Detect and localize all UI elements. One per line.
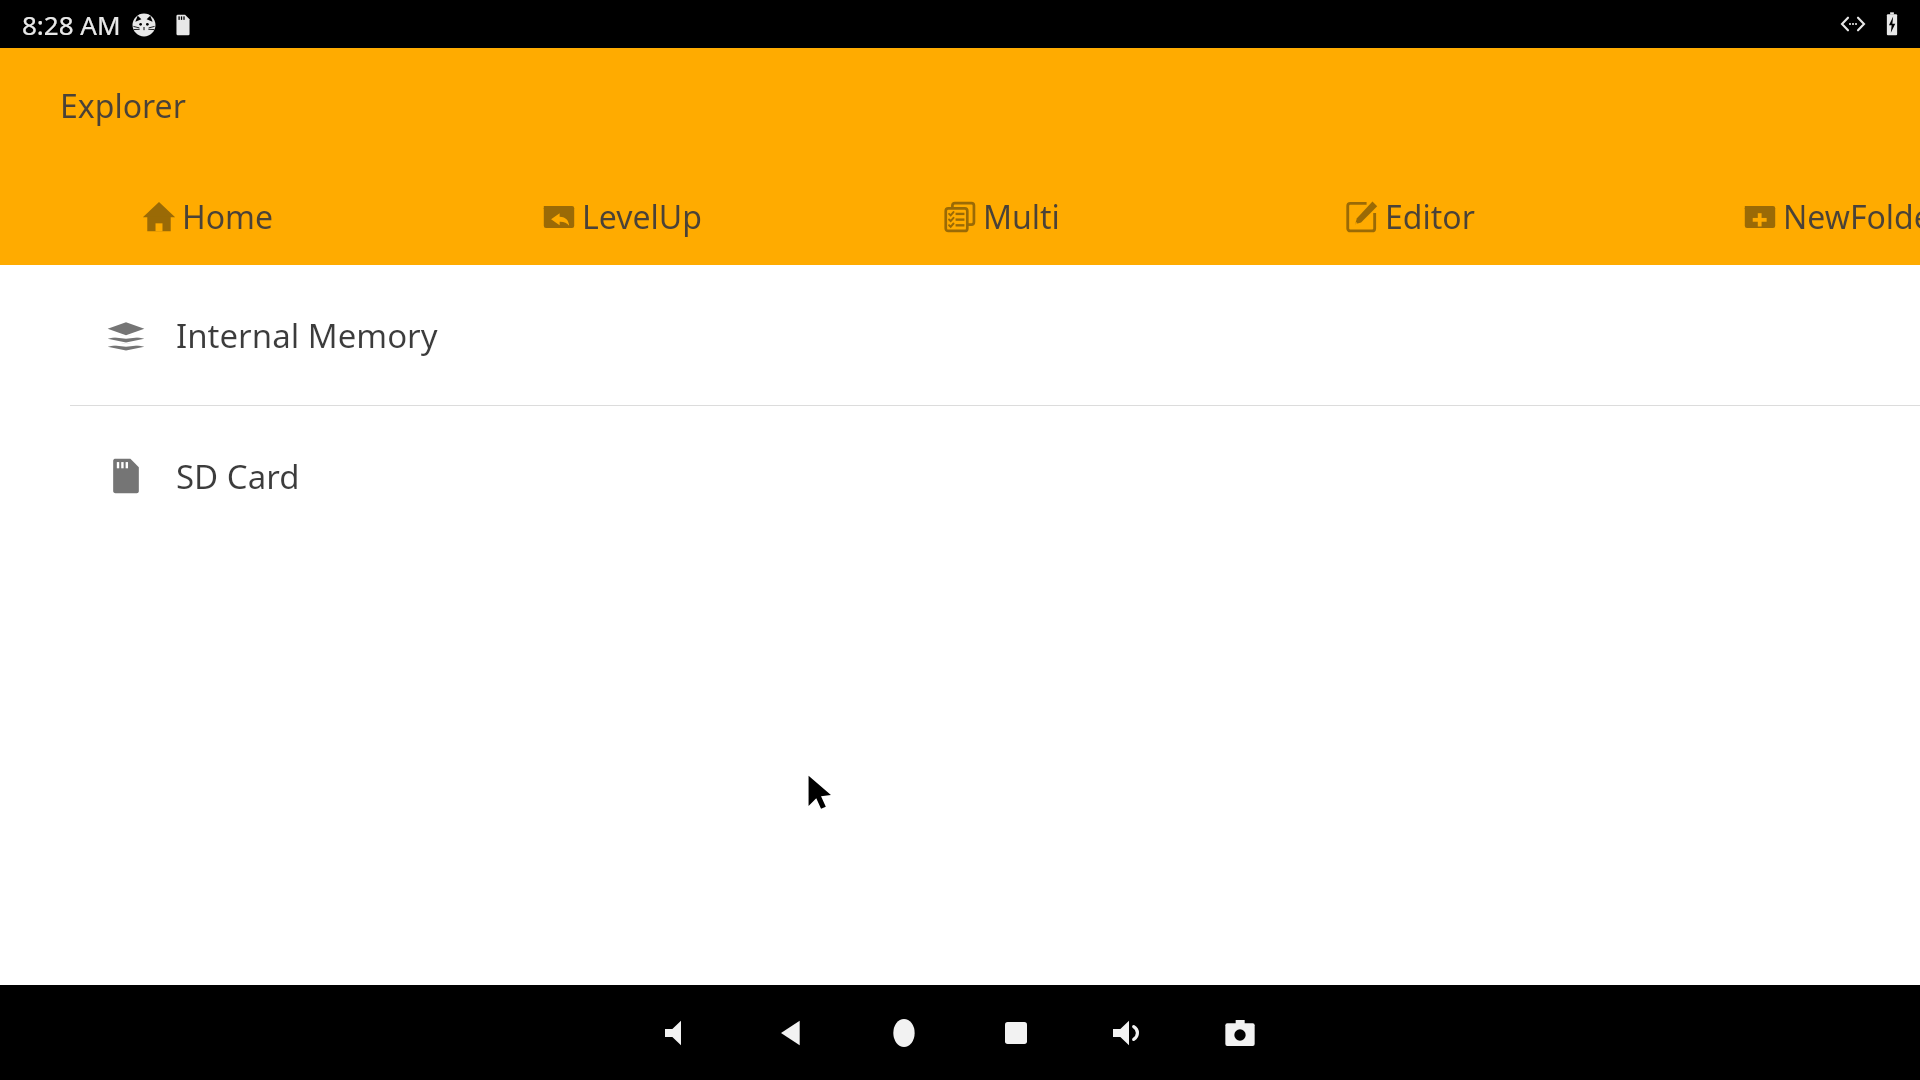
staticText: LevelUp (582, 195, 702, 239)
button[interactable]: Back (744, 985, 840, 1080)
button[interactable]: Home (856, 985, 952, 1080)
button[interactable]: Multi (935, 189, 1066, 245)
staticText: Internal Memory (176, 313, 438, 358)
button[interactable]: Screenshot (1192, 985, 1288, 1080)
button[interactable]: Internal Memory (0, 265, 1920, 405)
button[interactable]: Home (134, 189, 280, 245)
staticText: Multi (983, 195, 1060, 239)
staticText: SD Card (176, 454, 300, 499)
button[interactable]: SD Card (0, 406, 1920, 546)
staticText: Editor (1385, 195, 1475, 239)
button[interactable]: LevelUp (534, 189, 708, 245)
staticText: 8:28 AM (22, 7, 121, 42)
staticText: Explorer (60, 84, 186, 128)
button[interactable]: Volume up (1080, 985, 1176, 1080)
button[interactable]: NewFolder (1735, 189, 1920, 245)
button[interactable]: Volume down (632, 985, 728, 1080)
button[interactable]: Editor (1337, 189, 1481, 245)
staticText: NewFolder (1783, 195, 1920, 239)
staticText: Home (182, 195, 274, 239)
button[interactable]: Recent apps (968, 985, 1064, 1080)
